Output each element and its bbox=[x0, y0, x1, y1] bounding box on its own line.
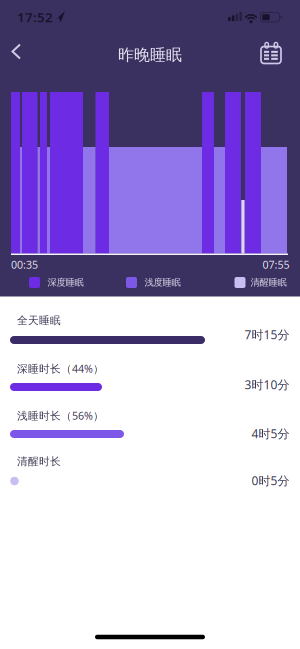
staticText: 深睡时长（44%） bbox=[17, 361, 104, 376]
staticText: 昨晚睡眠 bbox=[118, 45, 182, 65]
button[interactable]: Calendar bbox=[257, 40, 285, 68]
staticText: 17:52 bbox=[17, 8, 53, 26]
staticText: 7时15分 bbox=[244, 326, 289, 342]
button[interactable]: Back bbox=[0, 36, 30, 66]
staticText: 全天睡眠 bbox=[17, 314, 61, 327]
staticText: 清醒时长 bbox=[17, 455, 61, 468]
staticText: 3时10分 bbox=[244, 376, 289, 392]
staticText: 深度睡眠 bbox=[47, 277, 83, 288]
staticText: 清醒睡眠 bbox=[250, 277, 286, 288]
staticText: 07:55 bbox=[262, 257, 289, 272]
staticText: 浅度睡眠 bbox=[144, 277, 180, 288]
staticText: 00:35 bbox=[11, 257, 38, 272]
staticText: 0时5分 bbox=[251, 472, 289, 488]
staticText: 浅睡时长（56%） bbox=[17, 408, 104, 423]
staticText: 4时5分 bbox=[251, 425, 289, 441]
